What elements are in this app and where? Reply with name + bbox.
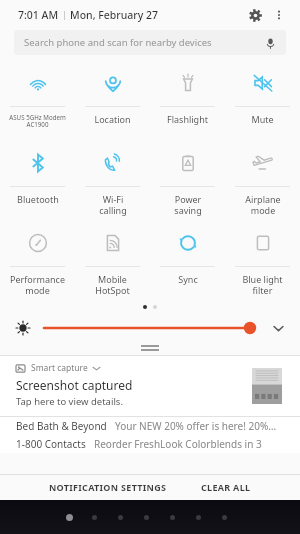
button[interactable]: NOTIFICATION SETTINGS [39, 477, 177, 497]
button[interactable]: Smart capture [0, 356, 300, 416]
button[interactable]: Power saving [150, 139, 225, 219]
staticText: Mobile HotSpot [95, 273, 130, 296]
staticText: Flashlight [167, 113, 208, 125]
staticText: Tap here to view details. [16, 395, 123, 408]
button[interactable]: Blue light filter [225, 219, 300, 299]
button[interactable]: Brightness [44, 318, 258, 338]
button[interactable]: 1-800 Contacts [16, 435, 288, 453]
button[interactable]: Mobile HotSpot [75, 219, 150, 299]
staticText: Airplane mode [245, 193, 281, 216]
button[interactable]: Airplane mode [225, 139, 300, 219]
staticText: 1-800 Contacts [16, 437, 86, 451]
staticText: Your NEW 20% offer is here! 20%… [115, 419, 277, 433]
button[interactable]: Location [75, 59, 150, 139]
staticText: Smart capture [31, 362, 88, 374]
staticText: Power saving [174, 193, 202, 216]
staticText: Blue light filter [242, 273, 283, 296]
staticText: Mute [251, 113, 274, 125]
staticText: Search phone and scan for nearby devices [24, 36, 212, 49]
staticText: Bluetooth [17, 193, 59, 205]
button[interactable]: Bed Bath & Beyond [16, 417, 288, 435]
staticText: Location [94, 113, 131, 125]
button[interactable]: ASUS 5GHz Modem AC1900 [0, 59, 75, 139]
button[interactable]: More options [268, 4, 290, 26]
staticText: Wi-Fi calling [99, 193, 127, 216]
staticText: Bed Bath & Beyond [16, 419, 107, 433]
staticText: Mon, February 27 [70, 8, 159, 22]
button[interactable]: Wi-Fi calling [75, 139, 150, 219]
button[interactable]: Flashlight [150, 59, 225, 139]
button[interactable]: Mute [225, 59, 300, 139]
staticText: CLEAR ALL [201, 481, 251, 493]
staticText: 7:01 AM [18, 8, 59, 22]
button[interactable]: Sync [150, 219, 225, 299]
button[interactable]: Settings [242, 2, 268, 28]
staticText: ASUS 5GHz Modem AC1900 [9, 113, 66, 129]
button[interactable]: Expand brightness settings [268, 318, 288, 338]
staticText: Screenshot captured [16, 377, 133, 393]
staticText: Performance mode [10, 273, 65, 296]
button[interactable]: Bluetooth [0, 139, 75, 219]
staticText: NOTIFICATION SETTINGS [49, 481, 167, 493]
button[interactable]: Performance mode [0, 219, 75, 299]
staticText: Reorder FreshLook Colorblends in 3 [94, 437, 262, 451]
button[interactable]: Search phone and scan for nearby devices [14, 30, 286, 55]
button[interactable]: CLEAR ALL [191, 477, 261, 497]
staticText: Sync [178, 273, 198, 285]
